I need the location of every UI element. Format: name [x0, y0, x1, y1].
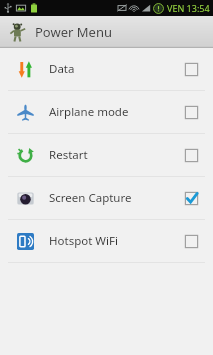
staticText: Power Menu: [35, 23, 112, 41]
staticText: Data: [49, 61, 184, 77]
button[interactable]: Data: [0, 48, 213, 90]
button[interactable]: Airplane mode: [0, 91, 213, 133]
button[interactable]: Screen Capture: [0, 177, 213, 219]
staticText: Hotspot WiFi: [49, 233, 184, 249]
button[interactable]: Restart: [0, 134, 213, 176]
other: App icon: [8, 22, 28, 42]
staticText: VEN 13:54: [167, 2, 210, 14]
staticText: Screen Capture: [49, 190, 184, 206]
staticText: Airplane mode: [49, 104, 184, 120]
staticText: Restart: [49, 147, 184, 163]
button[interactable]: Hotspot WiFi: [0, 220, 213, 262]
